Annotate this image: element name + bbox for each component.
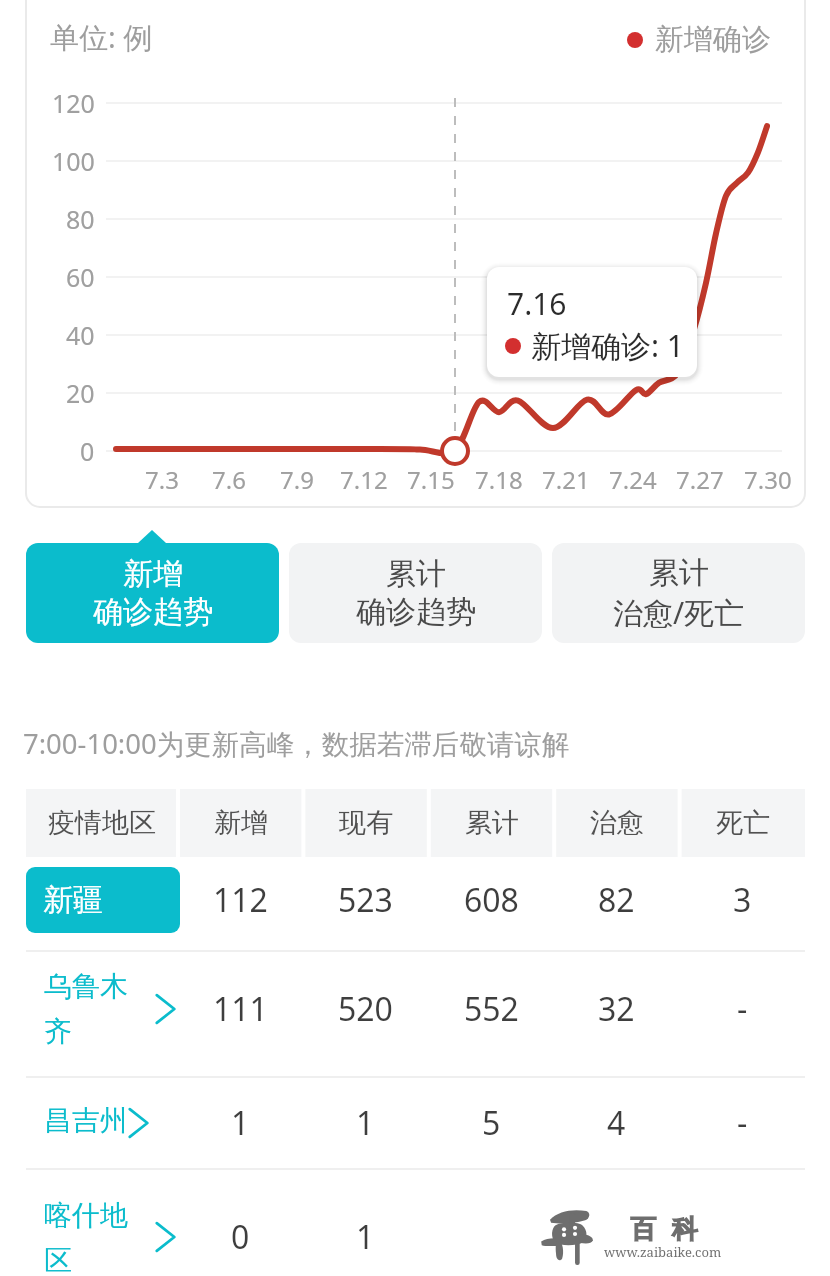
staticText: 区: [44, 1243, 72, 1276]
staticText: 7.27: [676, 463, 724, 496]
staticText: 520: [338, 987, 393, 1031]
staticText: 现有: [339, 806, 393, 840]
staticText: 乌鲁木: [44, 969, 128, 1004]
staticText: 60: [66, 260, 95, 294]
staticText: 百科: [622, 1213, 706, 1246]
staticText: 0: [80, 434, 95, 468]
staticText: 7.9: [280, 463, 314, 496]
staticText: 608: [464, 878, 519, 922]
staticText: 7.24: [609, 463, 657, 496]
staticText: 32: [598, 987, 635, 1031]
staticText: 7.21: [542, 463, 590, 496]
other: Open 乌鲁木齐: [154, 993, 178, 1025]
staticText: 120: [52, 86, 95, 120]
staticText: 死亡: [716, 806, 770, 840]
staticText: 7.15: [407, 463, 455, 496]
staticText: 0: [231, 1215, 250, 1259]
button[interactable]: 喀什地: [26, 1168, 805, 1276]
staticText: 7:00-10:00为更新高峰，数据若滞后敬请谅解: [23, 725, 570, 763]
staticText: 喀什地: [44, 1198, 128, 1233]
staticText: 累计: [386, 555, 446, 593]
staticText: 111: [213, 987, 268, 1031]
staticText: 累计: [649, 554, 709, 592]
staticText: 新增: [214, 806, 268, 840]
staticText: -: [737, 1101, 748, 1145]
staticText: 3: [733, 878, 752, 922]
staticText: 确诊趋势: [93, 593, 213, 631]
staticText: 新增确诊: [655, 21, 771, 58]
staticText: 523: [338, 878, 393, 922]
staticText: 7.3: [145, 463, 179, 496]
staticText: 7.18: [475, 463, 523, 496]
staticText: 新疆: [43, 881, 103, 919]
staticText: 552: [464, 987, 519, 1031]
staticText: 确诊趋势: [356, 593, 476, 631]
staticText: 新增确诊: 1: [531, 325, 684, 366]
staticText: 齐: [44, 1014, 72, 1049]
staticText: 82: [598, 878, 635, 922]
staticText: 7.30: [744, 463, 792, 496]
staticText: -: [737, 987, 748, 1031]
button[interactable]: 新疆: [26, 857, 805, 950]
button[interactable]: 昌吉州: [26, 1076, 805, 1168]
staticText: 新增: [123, 555, 183, 593]
staticText: 1: [356, 1101, 375, 1145]
staticText: 4: [607, 1101, 626, 1145]
staticText: 1: [356, 1215, 375, 1259]
staticText: 7.6: [212, 463, 246, 496]
button[interactable]: 累计: [552, 543, 805, 643]
staticText: 7.12: [340, 463, 388, 496]
other: Open 喀什地区: [154, 1221, 178, 1253]
button[interactable]: 乌鲁木: [26, 950, 805, 1076]
staticText: 40: [66, 318, 95, 352]
button[interactable]: 新增确诊: [627, 21, 771, 58]
staticText: 7.16: [507, 283, 567, 324]
staticText: 80: [66, 202, 95, 236]
other: 再百科 watermark: [539, 1203, 594, 1265]
other: Open 昌吉州: [127, 1107, 151, 1139]
staticText: www.zaibaike.com: [604, 1243, 722, 1261]
staticText: 112: [213, 878, 268, 922]
staticText: 100: [52, 144, 95, 178]
staticText: 单位: 例: [50, 17, 153, 57]
staticText: 疫情地区: [48, 806, 156, 840]
staticText: 累计: [465, 806, 519, 840]
button[interactable]: 新增: [26, 543, 279, 643]
staticText: 昌吉州: [44, 1103, 128, 1138]
staticText: 治愈/死亡: [613, 592, 745, 633]
staticText: 20: [66, 376, 95, 410]
button[interactable]: 累计: [289, 543, 542, 643]
staticText: 1: [231, 1101, 250, 1145]
staticText: 5: [482, 1101, 501, 1145]
staticText: 治愈: [590, 806, 644, 840]
